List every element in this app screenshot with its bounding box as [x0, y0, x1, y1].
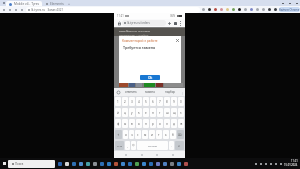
- button[interactable]: App: [77, 158, 84, 169]
- button[interactable]: Back: [1, 6, 7, 13]
- button[interactable]: г: [157, 108, 163, 117]
- button[interactable]: App: [91, 158, 98, 169]
- button[interactable]: Tray icon: [268, 158, 273, 169]
- button[interactable]: App: [182, 158, 189, 169]
- button[interactable]: More options: [178, 21, 183, 26]
- button[interactable]: н: [150, 108, 156, 117]
- button[interactable]: Close: [293, 0, 300, 6]
- button[interactable]: New tab: [166, 20, 172, 26]
- button[interactable]: Reload: [13, 6, 19, 13]
- button[interactable]: Extension: [236, 6, 242, 13]
- button[interactable]: Extension: [206, 6, 212, 13]
- button[interactable]: lk-tyres.ru/orders: [122, 20, 166, 26]
- button[interactable]: App: [154, 158, 161, 169]
- button[interactable]: ответить: [121, 88, 140, 96]
- button[interactable]: Extension: [200, 6, 206, 13]
- button[interactable]: д: [171, 119, 177, 128]
- button[interactable]: и: [149, 130, 155, 139]
- button[interactable]: ч: [129, 130, 134, 139]
- button[interactable]: Maximise: [286, 0, 293, 6]
- button[interactable]: Extension: [272, 6, 278, 13]
- button[interactable]: Поиск: [8, 160, 55, 168]
- button[interactable]: Войти в Chrome: [279, 7, 300, 12]
- button[interactable]: App: [133, 158, 140, 169]
- button[interactable]: ☺: [131, 141, 136, 150]
- button[interactable]: New tab: [67, 1, 71, 5]
- button[interactable]: в: [129, 119, 135, 128]
- button[interactable]: App: [168, 158, 175, 169]
- button[interactable]: Enter: [175, 141, 184, 150]
- button[interactable]: Extension: [254, 6, 260, 13]
- button[interactable]: App: [105, 158, 112, 169]
- button[interactable]: 7: [157, 97, 163, 106]
- button[interactable]: Extension: [260, 6, 266, 13]
- button[interactable]: 2: [122, 97, 128, 106]
- button[interactable]: 3: [129, 97, 135, 106]
- button[interactable]: б: [170, 130, 176, 139]
- button[interactable]: подбор: [160, 88, 180, 96]
- button[interactable]: 9: [171, 97, 177, 106]
- button[interactable]: Tab search: [2, 1, 6, 5]
- button[interactable]: App: [63, 158, 70, 169]
- button[interactable]: ж: [178, 119, 184, 128]
- button[interactable]: Extension: [218, 6, 224, 13]
- button[interactable]: ц: [122, 108, 128, 117]
- button[interactable]: замена: [140, 88, 160, 96]
- button[interactable]: Start: [1, 160, 8, 167]
- button[interactable]: Minimise: [279, 0, 286, 6]
- button[interactable]: More: [180, 90, 185, 95]
- button[interactable]: App: [119, 158, 126, 169]
- button[interactable]: м: [142, 130, 148, 139]
- button[interactable]: 4: [136, 97, 142, 106]
- button[interactable]: App: [175, 158, 182, 169]
- button[interactable]: Extension: [242, 6, 248, 13]
- button[interactable]: Mobile v4 - Tyres Chrome: [6, 1, 42, 6]
- button[interactable]: Home: [116, 20, 122, 26]
- button[interactable]: Tabs: [172, 20, 178, 26]
- button[interactable]: Home: [19, 6, 25, 13]
- button[interactable]: й: [115, 108, 121, 117]
- button[interactable]: lk-tyres.ru Заказ 4321: [26, 7, 200, 13]
- button[interactable]: Tray icon: [273, 158, 278, 169]
- button[interactable]: Extension: [212, 6, 218, 13]
- button[interactable]: 1: [115, 97, 121, 106]
- button[interactable]: Home: [139, 152, 145, 158]
- button[interactable]: е: [143, 108, 149, 117]
- button[interactable]: Back: [123, 152, 129, 158]
- button[interactable]: Clipboard: [116, 90, 121, 95]
- button[interactable]: 5: [143, 97, 149, 106]
- button[interactable]: с: [135, 130, 141, 139]
- button[interactable]: Tray icon: [258, 158, 263, 169]
- button[interactable]: App: [56, 158, 63, 169]
- button[interactable]: App: [126, 158, 133, 169]
- button[interactable]: Tray icon: [278, 158, 283, 169]
- button[interactable]: я: [123, 130, 128, 139]
- button[interactable]: Tray icon: [263, 158, 268, 169]
- button[interactable]: ,: [125, 141, 130, 150]
- button[interactable]: Close: [175, 38, 180, 43]
- button[interactable]: у: [129, 108, 135, 117]
- button[interactable]: к: [136, 108, 142, 117]
- button[interactable]: Tray icon: [253, 158, 258, 169]
- button[interactable]: App: [161, 158, 168, 169]
- button[interactable]: 0: [178, 97, 184, 106]
- button[interactable]: App: [147, 158, 154, 169]
- button[interactable]: Ok: [140, 75, 160, 80]
- button[interactable]: 8: [164, 97, 170, 106]
- button[interactable]: о: [157, 119, 163, 128]
- button[interactable]: App: [98, 158, 105, 169]
- button[interactable]: ь: [163, 130, 169, 139]
- button[interactable]: щ: [171, 108, 177, 117]
- button[interactable]: Forward: [7, 6, 13, 13]
- button[interactable]: Extension: [230, 6, 236, 13]
- button[interactable]: Extension: [266, 6, 272, 13]
- button[interactable]: ф: [115, 119, 121, 128]
- button[interactable]: App: [140, 158, 147, 169]
- button[interactable]: а: [136, 119, 142, 128]
- button[interactable]: Elements: [43, 1, 65, 6]
- button[interactable]: ?123: [115, 141, 124, 150]
- button[interactable]: App: [70, 158, 77, 169]
- button[interactable]: т: [156, 130, 162, 139]
- button[interactable]: .: [169, 141, 174, 150]
- button[interactable]: Extension: [224, 6, 230, 13]
